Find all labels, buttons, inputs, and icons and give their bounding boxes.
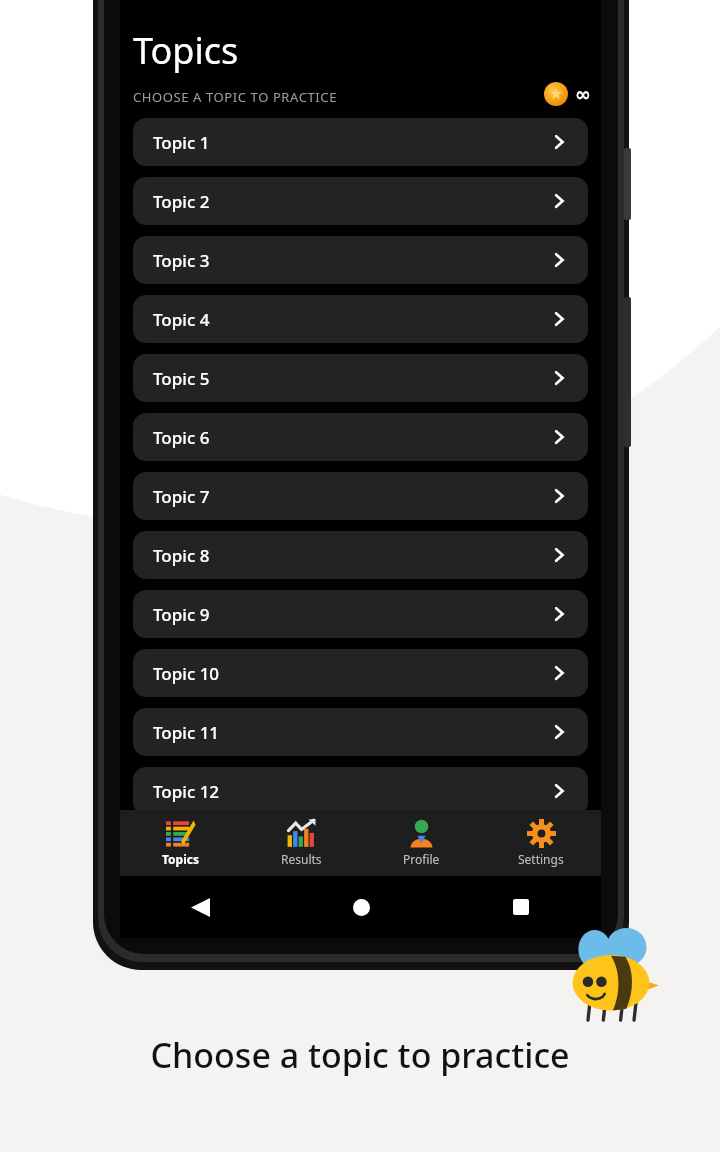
button[interactable]: Topic 5 [133, 354, 588, 402]
button[interactable]: Back [120, 876, 281, 938]
button[interactable]: Topics [120, 810, 241, 876]
staticText: Topics [162, 851, 199, 867]
staticText: Topic 1 [153, 131, 210, 154]
button[interactable]: Profile [361, 810, 481, 876]
staticText: Settings [518, 851, 564, 867]
button[interactable]: Topic 8 [133, 531, 588, 579]
button[interactable]: Topic 6 [133, 413, 588, 461]
staticText: Topics [133, 26, 239, 75]
button[interactable]: Topic 4 [133, 295, 588, 343]
staticText: Profile [403, 851, 440, 867]
button[interactable]: Recents [441, 876, 601, 938]
staticText: Topic 7 [153, 485, 210, 508]
button[interactable]: Topic 12 [133, 767, 588, 815]
staticText: ∞ [575, 83, 591, 105]
staticText: CHOOSE A TOPIC TO PRACTICE [133, 88, 337, 106]
button[interactable]: Topic 11 [133, 708, 588, 756]
staticText: Topic 8 [153, 544, 210, 567]
button[interactable]: Results [241, 810, 361, 876]
staticText: Topic 3 [153, 249, 210, 272]
button[interactable]: Topic 9 [133, 590, 588, 638]
button[interactable]: Settings [481, 810, 601, 876]
staticText: Choose a topic to practice [150, 1032, 570, 1078]
button[interactable]: Topic 2 [133, 177, 588, 225]
button[interactable]: Topic 10 [133, 649, 588, 697]
button[interactable]: Topic 1 [133, 118, 588, 166]
button[interactable]: Topic 7 [133, 472, 588, 520]
staticText: Results [281, 851, 322, 867]
staticText: Topic 5 [153, 367, 210, 390]
button[interactable]: Home [281, 876, 441, 938]
staticText: Topic 12 [153, 780, 220, 803]
staticText: Topic 4 [153, 308, 210, 331]
button[interactable]: Coins: unlimited [544, 82, 591, 106]
staticText: Topic 11 [153, 721, 220, 744]
staticText: Topic 2 [153, 190, 210, 213]
staticText: Topic 9 [153, 603, 210, 626]
staticText: Topic 6 [153, 426, 210, 449]
staticText: Topic 10 [153, 662, 220, 685]
button[interactable]: Topic 3 [133, 236, 588, 284]
